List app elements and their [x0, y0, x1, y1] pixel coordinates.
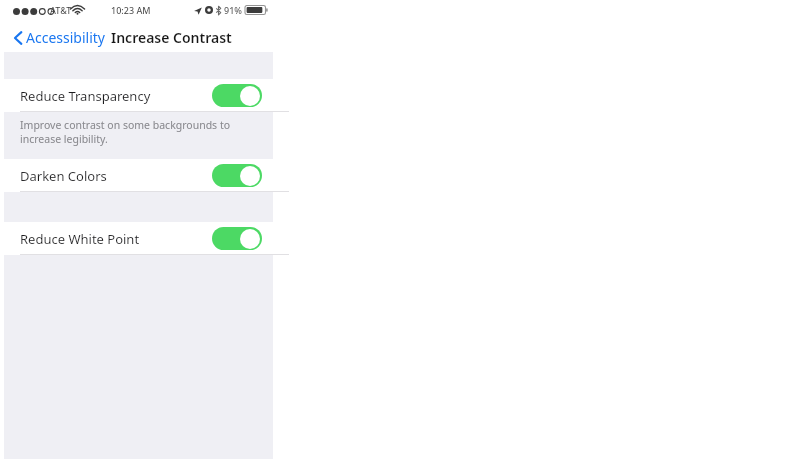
- button[interactable]: Accessibility: [0, 25, 111, 50]
- staticText: AT&T: [50, 4, 72, 16]
- staticText: Reduce White Point: [20, 230, 140, 248]
- button[interactable]: Toggle on: [212, 164, 262, 187]
- button[interactable]: Reduce Transparency: [4, 79, 273, 112]
- button[interactable]: Reduce White Point: [4, 222, 273, 255]
- staticText: 10:23 AM: [111, 4, 151, 16]
- button[interactable]: Toggle on: [212, 227, 262, 250]
- staticText: Increase Contrast: [111, 28, 232, 47]
- staticText: 91%: [224, 4, 242, 16]
- staticText: Darken Colors: [20, 167, 107, 185]
- button[interactable]: Darken Colors: [4, 159, 273, 192]
- staticText: Reduce Transparency: [20, 87, 151, 105]
- staticText: Improve contrast on some backgrounds to …: [20, 118, 251, 146]
- button[interactable]: Toggle on: [212, 84, 262, 107]
- staticText: Accessibility: [26, 28, 105, 47]
